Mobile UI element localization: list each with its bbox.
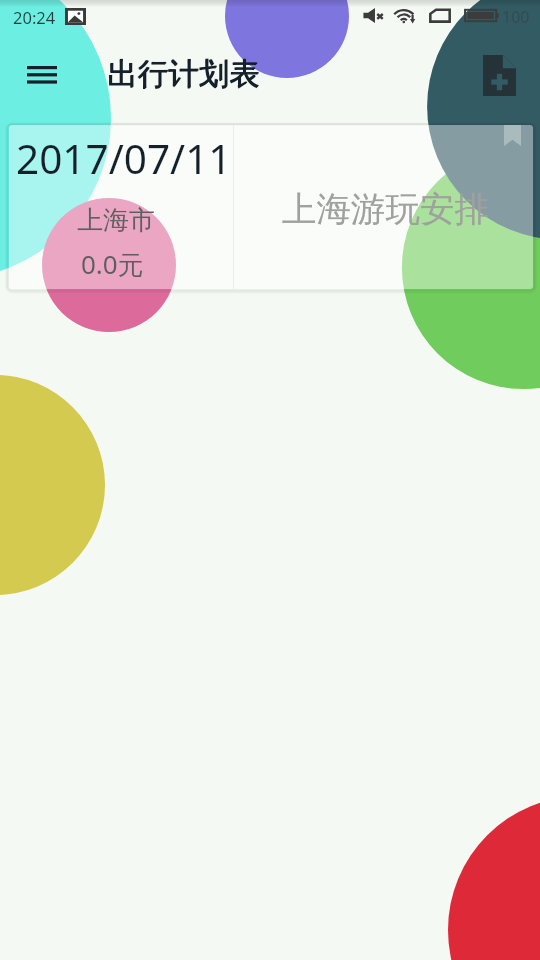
button[interactable]: 2017/07/11 — [9, 125, 533, 289]
staticText: 出行计划表 — [107, 56, 260, 94]
staticText: 2017/07/11 — [16, 131, 232, 186]
staticText: 上海游玩安排 — [282, 188, 489, 231]
button[interactable]: New plan — [471, 47, 527, 103]
staticText: 100 — [502, 6, 530, 28]
staticText: 出行计划表 — [107, 55, 260, 93]
button[interactable]: Menu — [14, 47, 70, 103]
staticText: 出行计划表 — [108, 55, 261, 93]
staticText: 上海市 — [77, 204, 155, 237]
staticText: 0.0元 — [81, 246, 144, 282]
staticText: 20:24 — [13, 6, 56, 28]
